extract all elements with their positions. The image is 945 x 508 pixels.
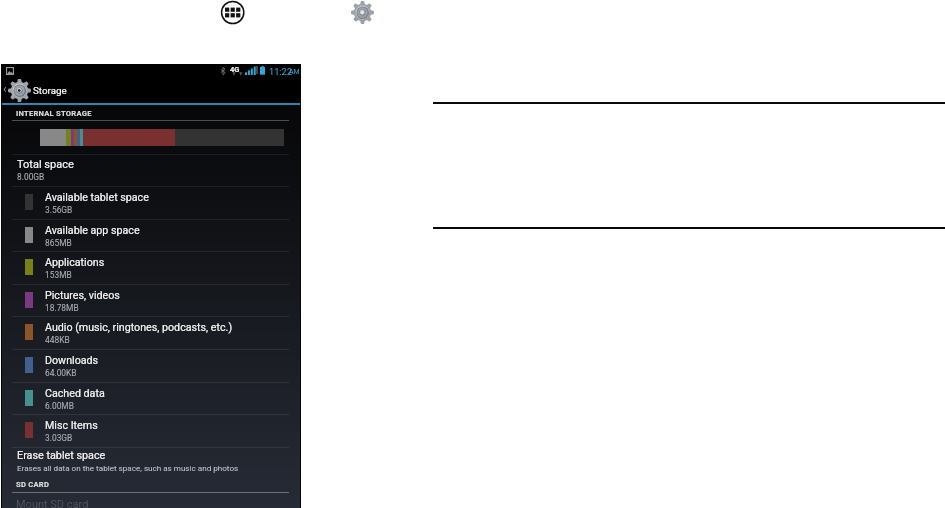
staticText: SD CARD bbox=[16, 480, 50, 489]
staticText: Cached data bbox=[45, 387, 105, 400]
button[interactable]: Downloads bbox=[1, 349, 301, 382]
staticText: Available app space bbox=[45, 224, 140, 237]
button[interactable]: Misc Items bbox=[1, 414, 301, 447]
staticText: Available tablet space bbox=[45, 191, 149, 204]
staticText: Misc Items bbox=[45, 419, 98, 432]
staticText: Downloads bbox=[45, 354, 99, 367]
button[interactable]: Available tablet space bbox=[1, 186, 301, 219]
button[interactable]: Settings bbox=[351, 1, 374, 24]
staticText: 3.03GB bbox=[45, 433, 73, 443]
staticText: 18.78MB bbox=[45, 303, 79, 313]
button[interactable]: Available app space bbox=[1, 219, 301, 252]
staticText: Audio (music, ringtones, podcasts, etc.) bbox=[45, 321, 233, 334]
staticText: Applications bbox=[45, 256, 105, 269]
staticText: 64.00KB bbox=[45, 368, 77, 378]
button[interactable]: Cached data bbox=[1, 382, 301, 415]
staticText: Erases all data on the tablet space, suc… bbox=[17, 463, 239, 472]
staticText: AM bbox=[289, 68, 300, 76]
staticText: 8.00GB bbox=[17, 172, 45, 182]
staticText: Mount SD card bbox=[16, 498, 89, 508]
staticText: INTERNAL STORAGE bbox=[16, 109, 92, 118]
staticText: Pictures, videos bbox=[45, 289, 120, 302]
button[interactable]: Pictures, videos bbox=[1, 284, 301, 317]
staticText: Total space bbox=[17, 158, 74, 171]
button[interactable]: Total space bbox=[17, 158, 317, 186]
button[interactable]: Erase tablet space bbox=[17, 449, 317, 479]
staticText: 6.00MB bbox=[45, 401, 74, 411]
staticText: Erase tablet space bbox=[17, 449, 106, 462]
staticText: ‹ bbox=[3, 82, 7, 96]
button[interactable]: Applications bbox=[1, 251, 301, 284]
staticText: 865MB bbox=[45, 238, 72, 248]
staticText: Storage bbox=[33, 85, 67, 96]
staticText: 4G bbox=[230, 65, 240, 74]
staticText: 153MB bbox=[45, 270, 72, 280]
button[interactable]: Audio (music, ringtones, podcasts, etc.) bbox=[1, 316, 301, 349]
button[interactable]: Navigate up, Storage bbox=[1, 76, 301, 103]
staticText: 3.56GB bbox=[45, 205, 73, 215]
button[interactable]: All apps bbox=[220, 0, 245, 25]
staticText: 11:22 bbox=[269, 66, 292, 77]
staticText: 448KB bbox=[45, 335, 70, 345]
